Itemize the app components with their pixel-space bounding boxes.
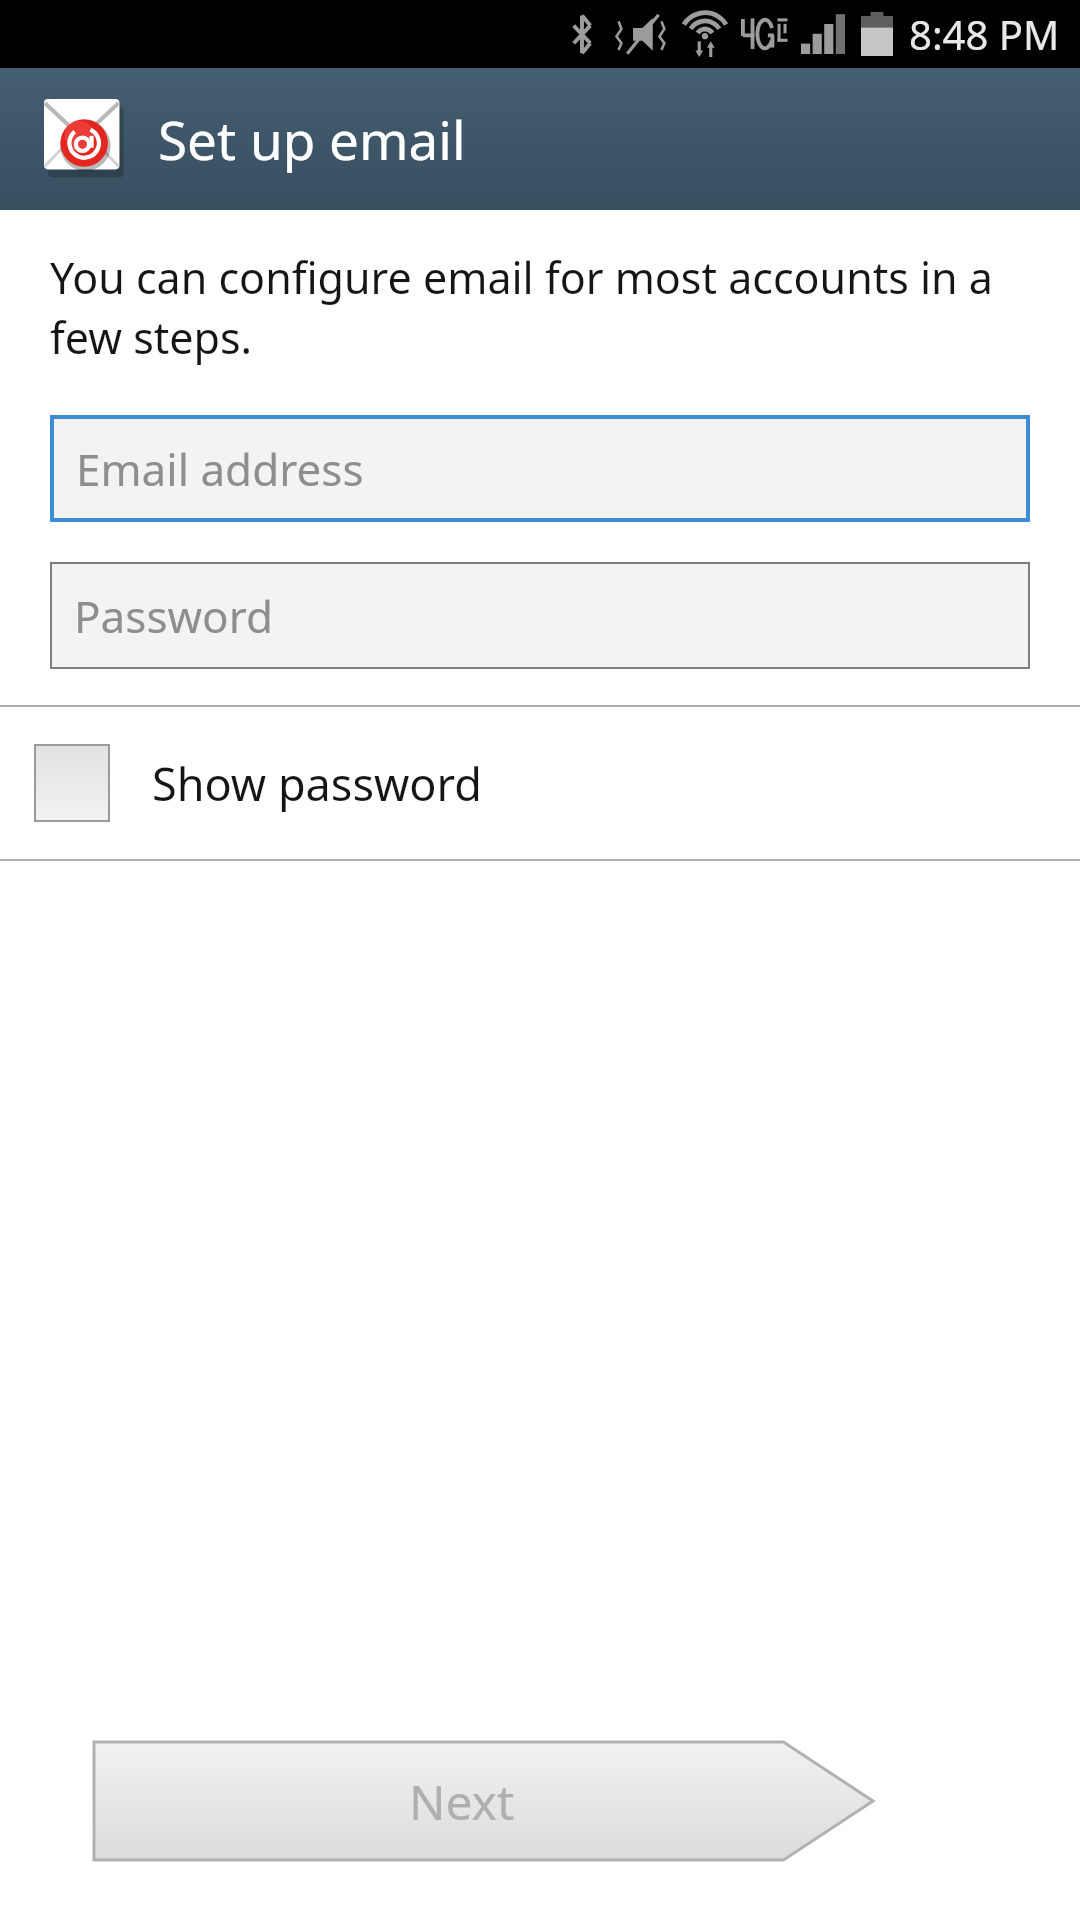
staticText: Show password <box>152 753 482 814</box>
staticText: You can configure email for most account… <box>50 248 1006 367</box>
staticText: 8:48 PM <box>909 7 1060 61</box>
button[interactable]: Show password <box>0 707 1080 859</box>
staticText: Set up email <box>158 103 466 175</box>
staticText: Email address <box>76 439 364 499</box>
button[interactable]: Password <box>52 564 1028 667</box>
staticText: Password <box>74 586 274 646</box>
button[interactable]: Next <box>94 1742 873 1860</box>
button[interactable]: Email address <box>54 419 1026 518</box>
staticText: Next <box>409 1769 515 1834</box>
